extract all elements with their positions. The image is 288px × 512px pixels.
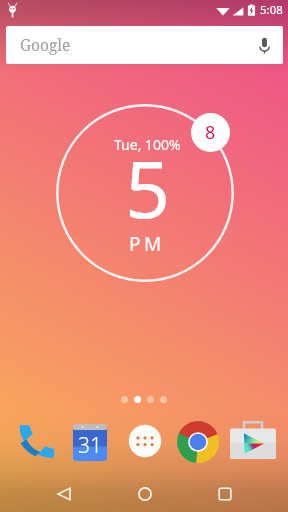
button[interactable]: 8 bbox=[191, 113, 230, 152]
button[interactable]: Voice search bbox=[245, 26, 283, 64]
staticText: Google bbox=[20, 34, 71, 55]
button[interactable]: Calendar bbox=[66, 417, 114, 465]
staticText: PM bbox=[129, 231, 165, 257]
staticText: 8 bbox=[205, 120, 216, 145]
button[interactable]: Back bbox=[41, 471, 87, 512]
button[interactable]: Home bbox=[122, 471, 168, 512]
button[interactable]: Apps bbox=[121, 417, 169, 465]
staticText: Tue, 100% bbox=[114, 135, 181, 154]
staticText: 31 bbox=[78, 431, 102, 460]
button[interactable]: Phone bbox=[13, 417, 61, 465]
button[interactable]: Chrome bbox=[174, 417, 222, 465]
staticText: 5 bbox=[125, 134, 171, 242]
button[interactable]: Recents bbox=[202, 471, 248, 512]
staticText: 5:08 bbox=[260, 2, 283, 18]
button[interactable]: Play Store bbox=[228, 417, 276, 465]
button[interactable] bbox=[56, 104, 234, 282]
button[interactable]: Google bbox=[6, 26, 283, 64]
